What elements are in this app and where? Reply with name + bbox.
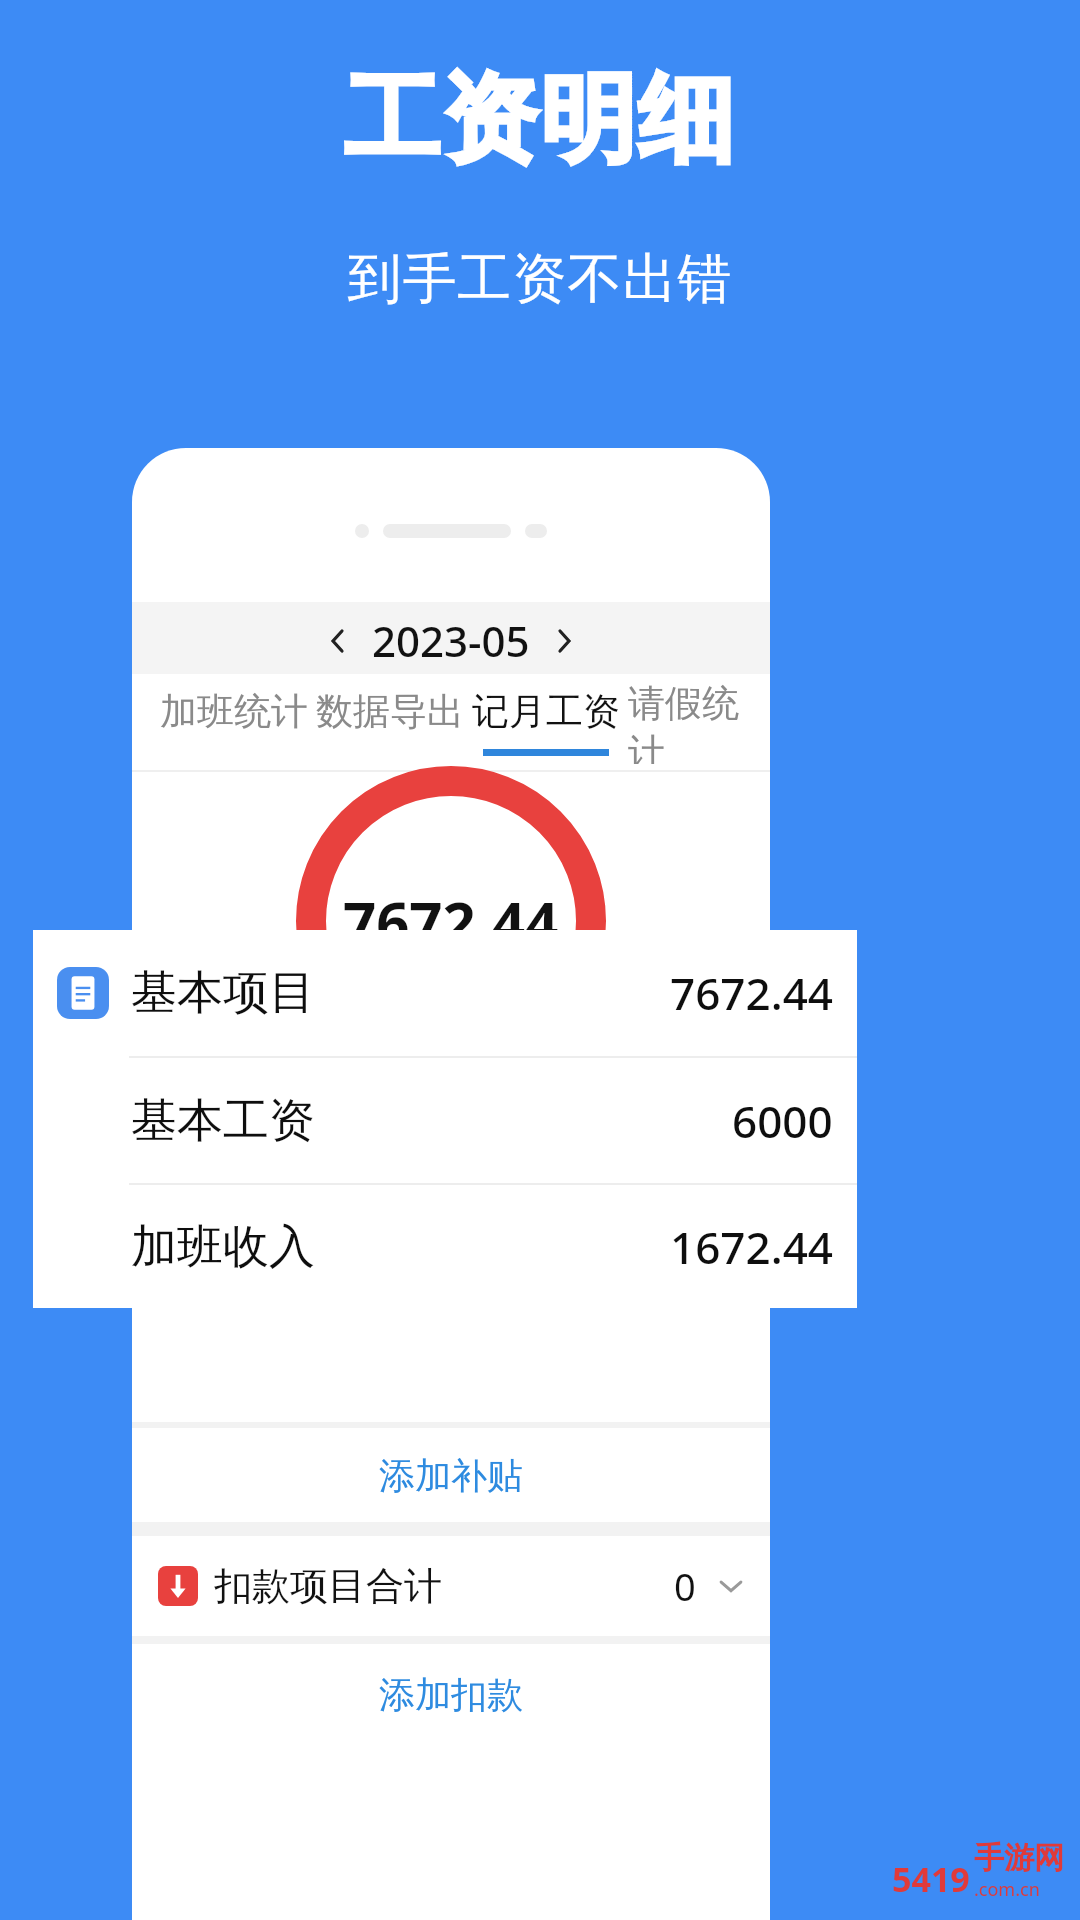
button[interactable]: 添加扣款	[132, 1644, 770, 1744]
staticText: 到手工资不出错	[0, 245, 1080, 313]
button[interactable]: 记月工资	[468, 682, 624, 762]
staticText: 7672.44	[670, 963, 833, 1023]
staticText: 6000	[732, 1091, 833, 1151]
button[interactable]: 加班统计	[156, 682, 312, 762]
staticText: 5419	[892, 1856, 970, 1902]
staticText: 数据导出	[316, 688, 464, 735]
staticText: 工资明细	[0, 60, 1080, 181]
staticText: .com.cn	[974, 1877, 1040, 1902]
staticText: 7672.44	[343, 882, 559, 961]
staticText: 加班统计	[160, 688, 308, 735]
staticText: 加班收入	[131, 1218, 315, 1276]
button[interactable]: 请假统计	[624, 674, 746, 770]
staticText: 基本项目	[131, 964, 315, 1022]
button[interactable]: 基本工资	[33, 1058, 857, 1183]
staticText: 基本工资	[131, 1092, 315, 1150]
staticText: 1672.44	[670, 1217, 833, 1277]
staticText: 扣款项目合计	[214, 1562, 442, 1610]
button[interactable]: 基本项目	[33, 930, 857, 1056]
button[interactable]: 扣款项目合计	[132, 1536, 770, 1636]
staticText: 添加补贴	[379, 1453, 523, 1498]
staticText: 请假统计	[628, 680, 742, 764]
button[interactable]: 数据导出	[312, 682, 468, 762]
staticText: 0	[674, 1560, 696, 1612]
staticText: 手游网	[974, 1839, 1064, 1877]
button[interactable]: Next month	[542, 619, 586, 663]
button[interactable]: 添加补贴	[132, 1428, 770, 1522]
staticText: 添加扣款	[379, 1672, 523, 1717]
button[interactable]: 加班收入	[33, 1185, 857, 1308]
button[interactable]: Previous month	[316, 619, 360, 663]
staticText: 记月工资	[472, 688, 620, 735]
staticText: 2023-05	[372, 612, 530, 669]
